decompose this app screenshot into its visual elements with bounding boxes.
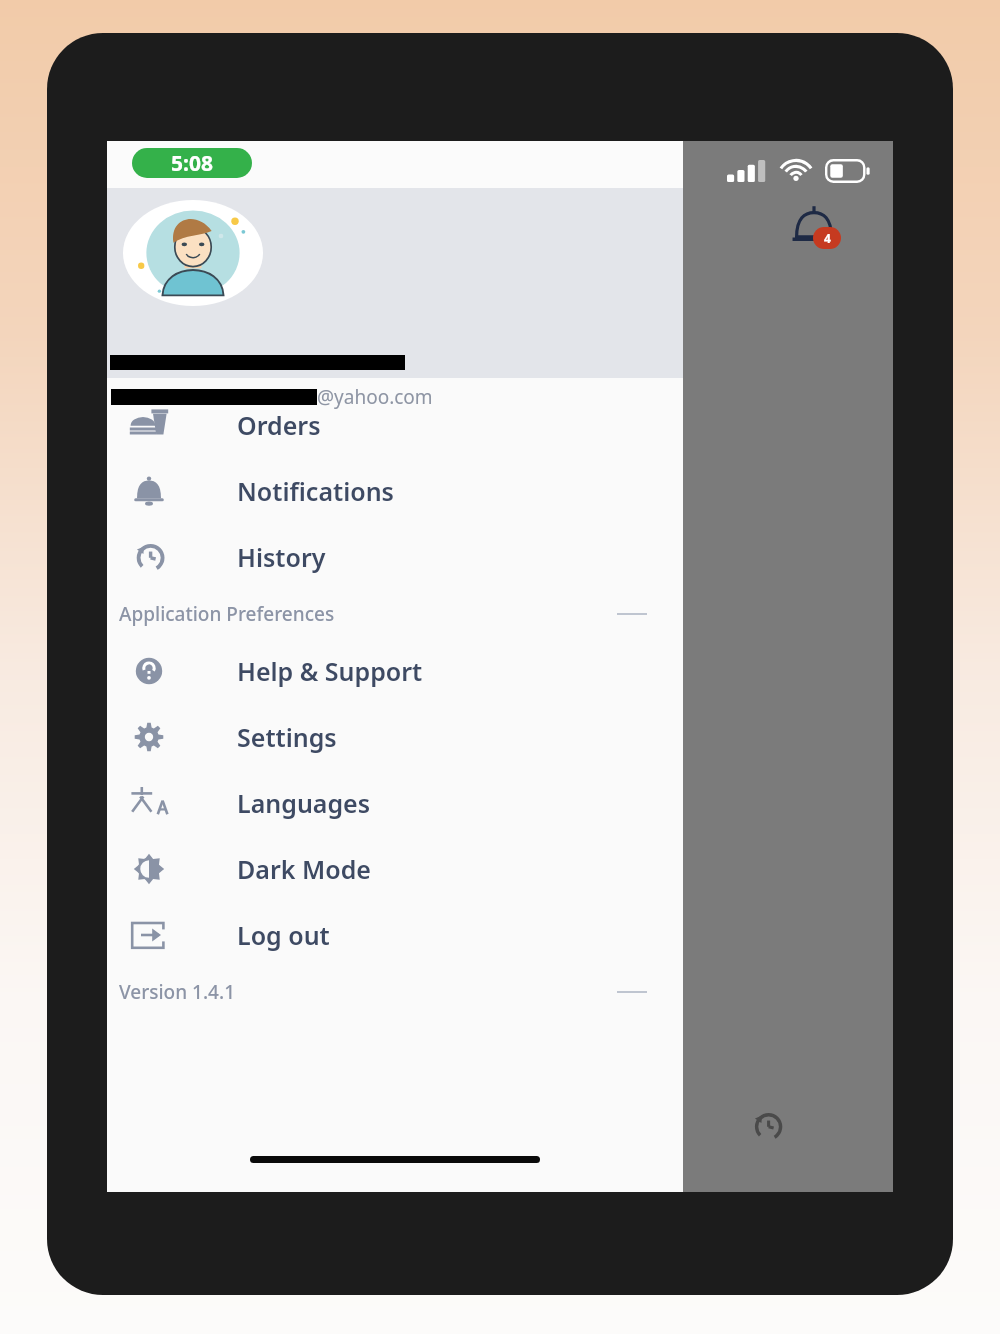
- staticText: 4: [824, 230, 831, 246]
- button[interactable]: Languages: [107, 770, 683, 836]
- staticText: Log out: [237, 918, 330, 952]
- button[interactable]: Notifications: [107, 458, 683, 524]
- button[interactable]: Dark Mode: [107, 836, 683, 902]
- staticText: @yahoo.com: [317, 384, 433, 410]
- button[interactable]: Settings: [107, 704, 683, 770]
- staticText: History: [237, 540, 326, 574]
- staticText: Orders: [237, 408, 321, 442]
- button[interactable]: Notifications: [785, 201, 843, 259]
- staticText: Help & Support: [237, 654, 423, 688]
- button[interactable]: Orders: [107, 392, 683, 458]
- staticText: Settings: [237, 720, 337, 754]
- staticText: Languages: [237, 786, 371, 820]
- button[interactable]: Help & Support: [107, 638, 683, 704]
- button[interactable]: History: [107, 524, 683, 590]
- staticText: Version 1.4.1: [119, 979, 236, 1005]
- staticText: Application Preferences: [119, 601, 335, 627]
- staticText: Notifications: [237, 474, 394, 508]
- button[interactable]: Log out: [107, 902, 683, 968]
- staticText: 5:08: [171, 149, 213, 178]
- staticText: Dark Mode: [237, 852, 371, 886]
